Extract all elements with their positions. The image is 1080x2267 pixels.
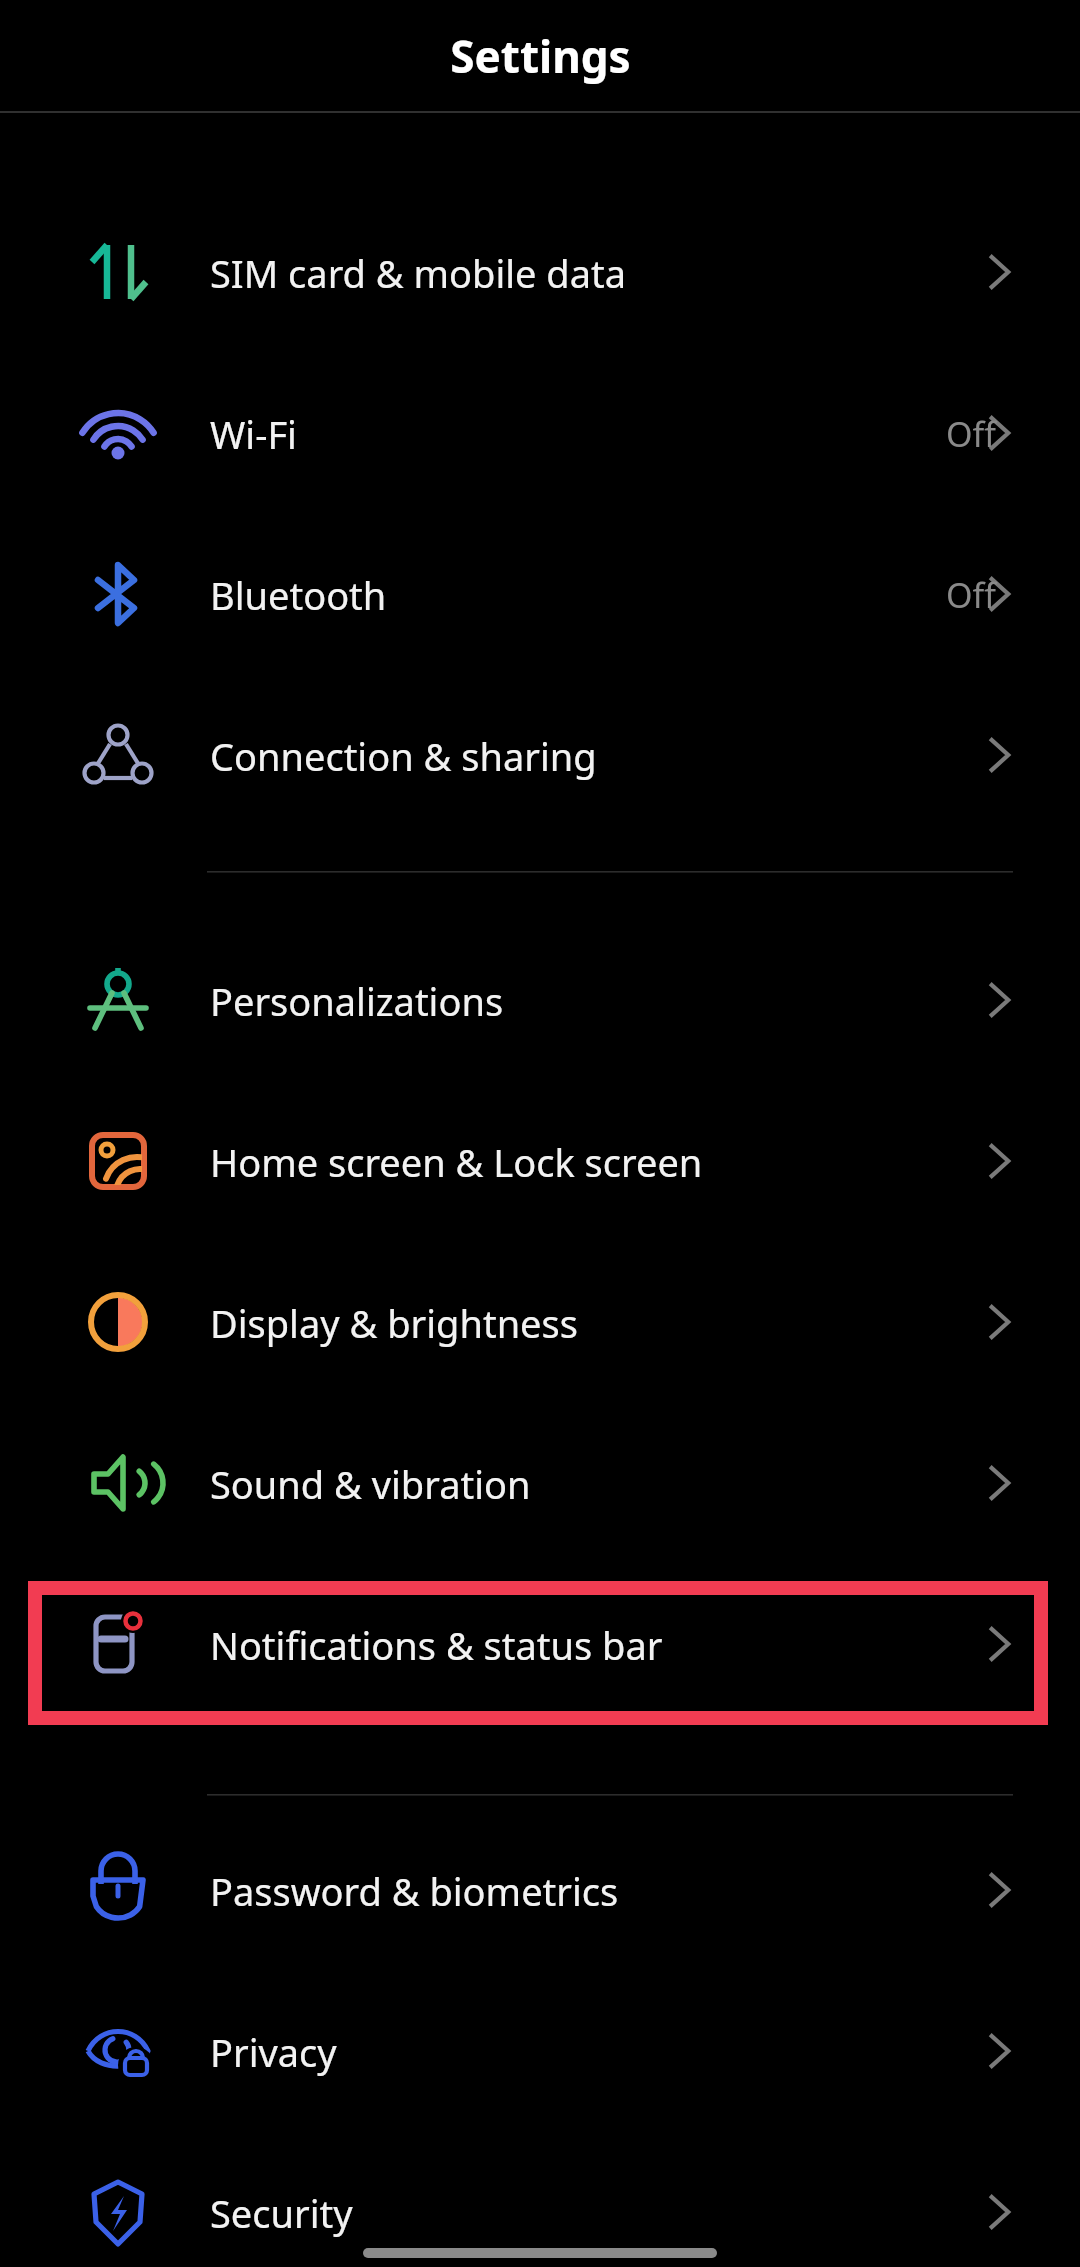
- button[interactable]: Connection & sharing: [0, 675, 1080, 836]
- staticText: Connection & sharing: [210, 730, 597, 782]
- staticText: Security: [210, 2187, 353, 2239]
- staticText: Notifications & status bar: [210, 1619, 663, 1671]
- staticText: Wi-Fi: [210, 408, 297, 460]
- staticText: Off: [946, 411, 996, 457]
- staticText: Display & brightness: [210, 1297, 578, 1349]
- staticText: Personalizations: [210, 975, 504, 1027]
- button[interactable]: Home screen & Lock screen: [0, 1081, 1080, 1242]
- staticText: Privacy: [210, 2026, 337, 2078]
- button[interactable]: Wi-Fi: [0, 353, 1080, 514]
- staticText: Sound & vibration: [210, 1458, 531, 1510]
- button[interactable]: Bluetooth: [0, 514, 1080, 675]
- button[interactable]: Password & biometrics: [0, 1810, 1080, 1971]
- button[interactable]: Settings: [0, 0, 1080, 111]
- staticText: Home screen & Lock screen: [210, 1136, 703, 1188]
- button[interactable]: Privacy: [0, 1971, 1080, 2132]
- button[interactable]: Display & brightness: [0, 1242, 1080, 1403]
- staticText: Bluetooth: [210, 569, 387, 621]
- staticText: Settings: [450, 26, 631, 86]
- button[interactable]: Notifications & status bar: [0, 1564, 1080, 1725]
- button[interactable]: Sound & vibration: [0, 1403, 1080, 1564]
- button[interactable]: Security: [0, 2132, 1080, 2267]
- staticText: Password & biometrics: [210, 1865, 619, 1917]
- button[interactable]: Personalizations: [0, 920, 1080, 1081]
- staticText: SIM card & mobile data: [210, 247, 627, 299]
- button[interactable]: SIM card & mobile data: [0, 192, 1080, 353]
- staticText: Off: [946, 572, 996, 618]
